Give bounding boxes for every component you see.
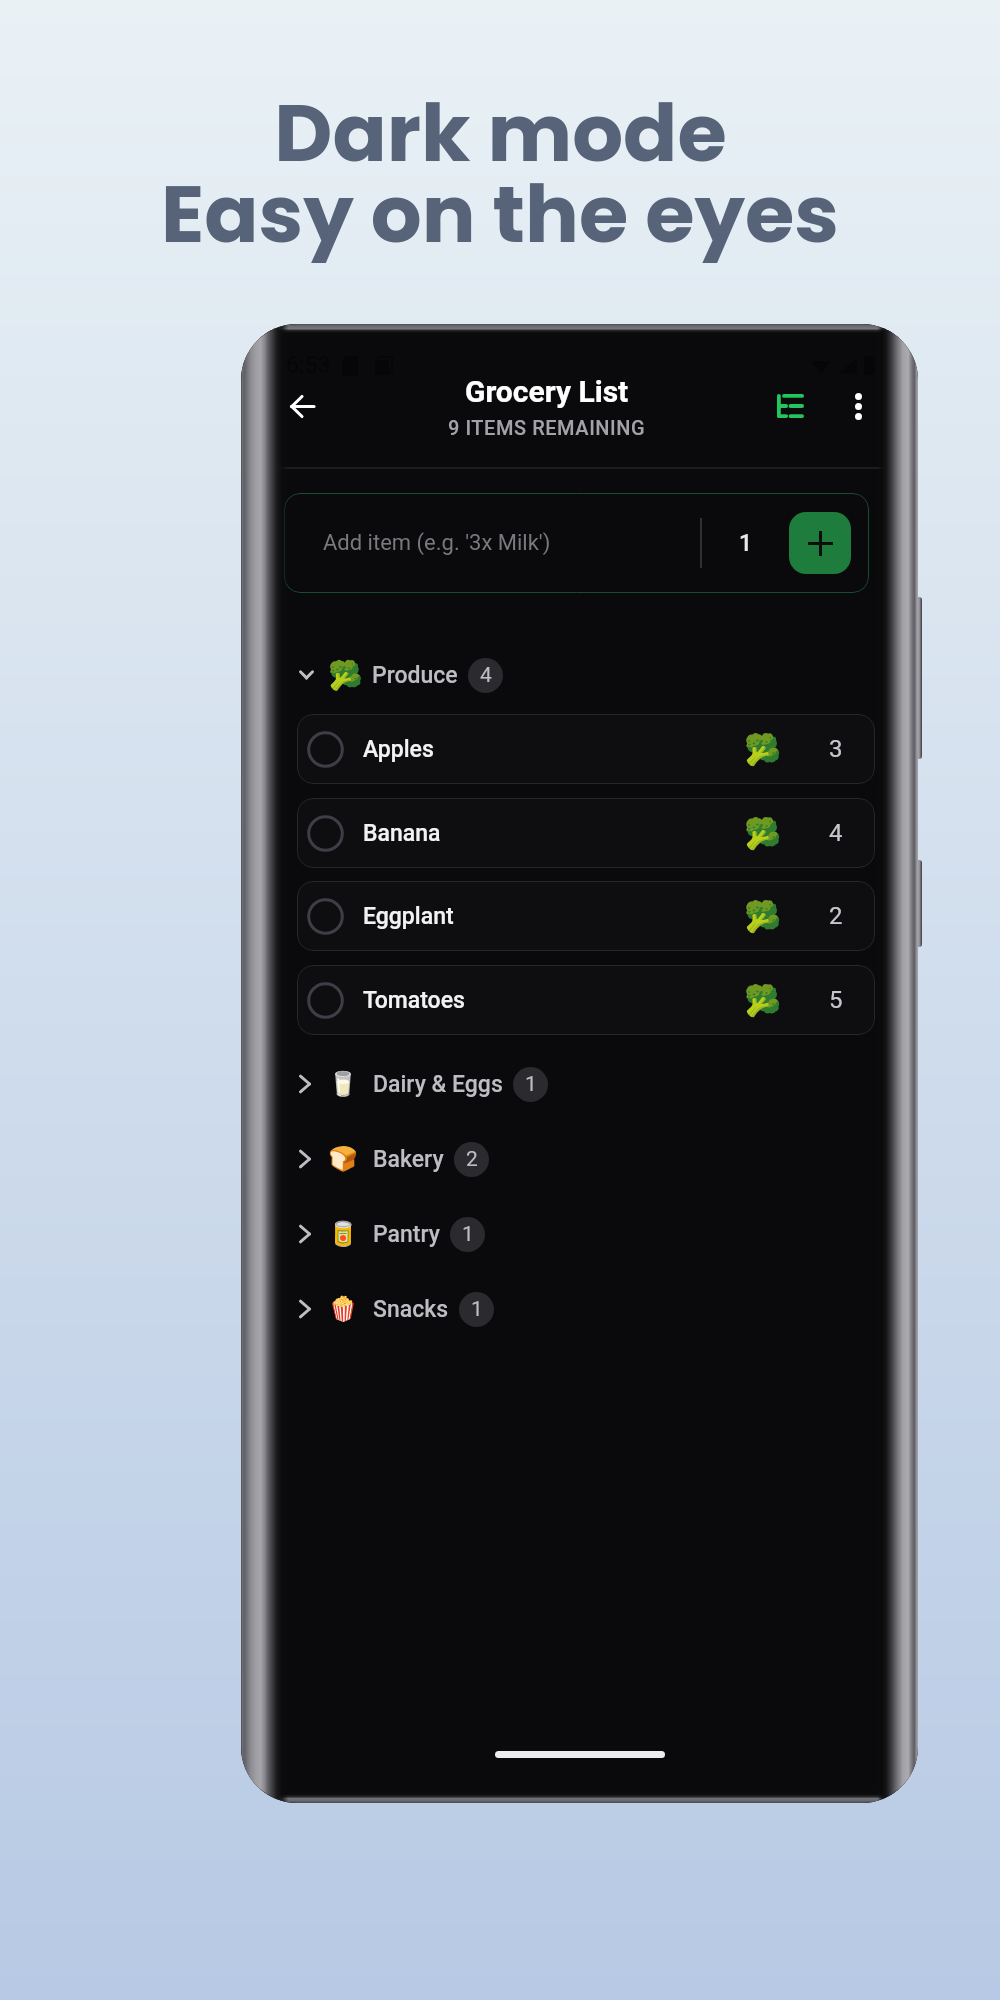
button[interactable]: 🍞 <box>260 1135 899 1183</box>
button[interactable]: Add item <box>789 512 851 574</box>
button[interactable]: Apples <box>297 714 875 784</box>
button[interactable]: Back <box>276 380 328 432</box>
staticText: Bakery <box>373 1146 444 1173</box>
button[interactable]: Eggplant <box>297 881 875 951</box>
staticText: 🥦 <box>744 732 782 767</box>
button[interactable]: Tomatoes <box>297 965 875 1035</box>
staticText: 2 <box>829 902 843 930</box>
staticText: Easy on the eyes <box>161 158 839 270</box>
staticText: 🍿 <box>328 1295 358 1323</box>
staticText: Eggplant <box>363 903 744 930</box>
staticText: 3 <box>829 735 843 763</box>
staticText: 🥛 <box>328 1070 358 1098</box>
staticText: 🥦 <box>744 983 782 1018</box>
staticText: 2 <box>466 1147 478 1172</box>
button[interactable]: 🥫 <box>260 1210 899 1258</box>
staticText: Dark mode <box>274 77 727 189</box>
staticText: 1 <box>739 530 753 557</box>
staticText: Grocery List <box>465 374 629 409</box>
button[interactable]: More options <box>834 382 882 430</box>
button[interactable]: Add item (e.g. '3x Milk') <box>284 493 869 593</box>
staticText: 🥫 <box>328 1220 358 1248</box>
staticText: Pantry <box>373 1221 440 1248</box>
staticText: 9 ITEMS REMAINING <box>448 416 646 439</box>
staticText: 4 <box>829 819 843 847</box>
staticText: Dairy & Eggs <box>373 1071 503 1098</box>
staticText: 1 <box>462 1222 474 1247</box>
staticText: Snacks <box>373 1296 449 1323</box>
staticText: Produce <box>372 662 458 689</box>
staticText: Add item (e.g. '3x Milk') <box>323 530 739 556</box>
button[interactable]: 🥦 <box>260 651 899 699</box>
staticText: 1 <box>471 1297 483 1322</box>
staticText: 🥦 <box>744 816 782 851</box>
staticText: 4 <box>480 663 492 688</box>
button[interactable]: 🥛 <box>260 1060 899 1108</box>
staticText: Banana <box>363 820 744 847</box>
button[interactable]: Sort list <box>766 382 814 430</box>
staticText: 1 <box>525 1072 537 1097</box>
staticText: Apples <box>363 736 744 763</box>
staticText: 🥦 <box>744 899 782 934</box>
staticText: Tomatoes <box>363 987 744 1014</box>
staticText: 🥦 <box>328 659 360 692</box>
button[interactable]: Banana <box>297 798 875 868</box>
staticText: 5 <box>829 986 843 1014</box>
button[interactable]: 🍿 <box>260 1285 899 1333</box>
staticText: 🍞 <box>328 1145 358 1173</box>
